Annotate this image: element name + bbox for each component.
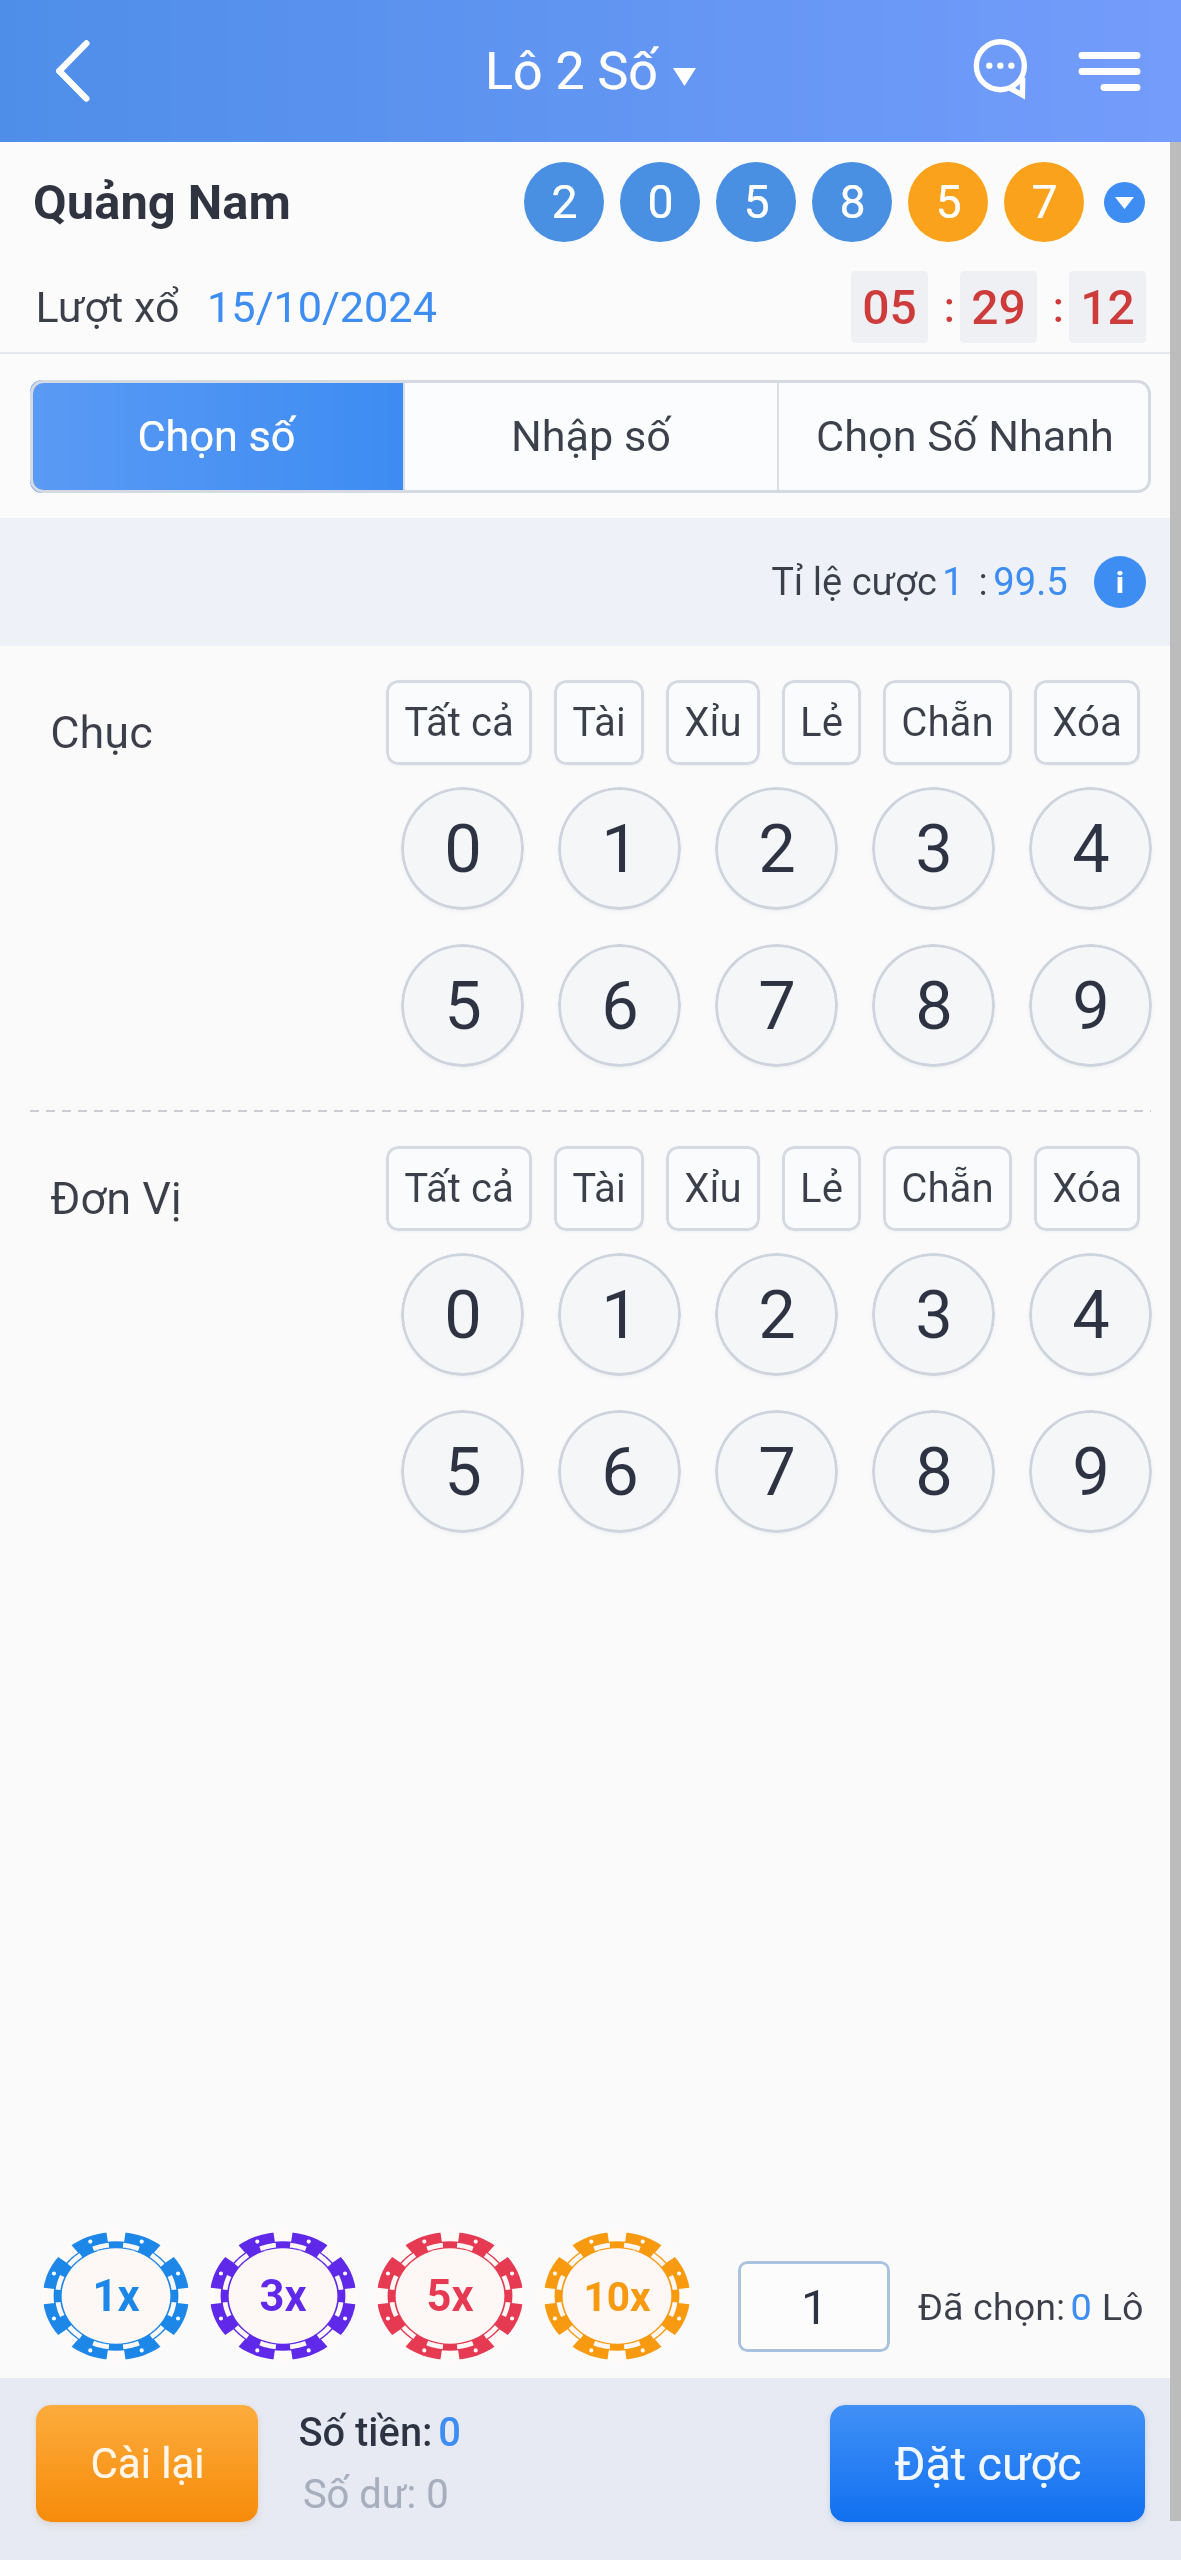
button[interactable]: 4 (1029, 787, 1152, 910)
button[interactable]: Tài (554, 1146, 644, 1231)
staticText: 1 (601, 810, 639, 888)
button[interactable]: Tất cả (386, 680, 532, 765)
button[interactable]: 5 (401, 944, 524, 1067)
staticText: : (928, 283, 960, 332)
button[interactable]: 8 (872, 1410, 995, 1533)
button[interactable]: 0 (401, 787, 524, 910)
staticText: 9 (1072, 1433, 1110, 1511)
staticText: 0 (426, 2471, 449, 2518)
staticText: 29 (971, 279, 1026, 335)
staticText: 6 (601, 1433, 639, 1511)
staticText: 3x (259, 2271, 307, 2322)
staticText: 3 (915, 810, 953, 888)
staticText: 7 (1031, 175, 1058, 229)
button[interactable]: Nhập số (405, 380, 777, 493)
button[interactable]: Chẵn (883, 1146, 1012, 1231)
staticText: 05 (862, 279, 917, 335)
staticText: Số dư: (293, 2471, 426, 2518)
button[interactable]: 9 (1029, 944, 1152, 1067)
button[interactable]: Cài lại (36, 2405, 258, 2522)
staticText: Lẻ (800, 699, 843, 746)
button[interactable]: 3 (872, 1253, 995, 1376)
staticText: Lô (1092, 2285, 1144, 2329)
staticText: Tất cả (404, 1165, 514, 1212)
button[interactable]: Expand results (1104, 182, 1145, 223)
button[interactable]: Chẵn (883, 680, 1012, 765)
staticText: Cài lại (90, 2439, 205, 2488)
staticText: 0 (438, 2409, 461, 2456)
button[interactable]: Tài (554, 680, 644, 765)
staticText: Chục (50, 706, 153, 759)
staticText: 5 (743, 175, 770, 229)
staticText: Xóa (1052, 1165, 1122, 1212)
staticText: 3 (915, 1276, 953, 1354)
button[interactable]: 1x (43, 2232, 189, 2360)
staticText: 0 (647, 175, 674, 229)
staticText: Đơn Vị (50, 1172, 182, 1225)
button[interactable]: Lẻ (782, 680, 861, 765)
staticText: 4 (1072, 1276, 1110, 1354)
button[interactable]: 3 (872, 787, 995, 910)
staticText: Chọn số (137, 411, 296, 462)
button[interactable]: 5x (377, 2232, 523, 2360)
button[interactable]: Chọn Số Nhanh (779, 380, 1151, 493)
button[interactable]: 1 (558, 787, 681, 910)
staticText: 8 (915, 1433, 953, 1511)
button[interactable]: Tất cả (386, 1146, 532, 1231)
staticText: Đã chọn: (913, 2285, 1070, 2329)
button[interactable]: 7 (715, 1410, 838, 1533)
button[interactable]: Chat (937, 5, 1069, 137)
staticText: 12 (1080, 279, 1135, 335)
staticText: 0 (444, 810, 482, 888)
button[interactable]: Menu (1040, 5, 1172, 137)
staticText: Số tiền: (293, 2409, 438, 2456)
button[interactable]: 9 (1029, 1410, 1152, 1533)
button[interactable]: 4 (1029, 1253, 1152, 1376)
staticText: 1 (942, 560, 964, 605)
button[interactable]: 7 (715, 944, 838, 1067)
staticText: 4 (1072, 810, 1110, 888)
button[interactable]: Xóa (1034, 1146, 1140, 1231)
staticText: Chẵn (901, 1165, 994, 1212)
button[interactable]: Back (6, 5, 138, 137)
button[interactable]: 1 (738, 2261, 890, 2352)
button[interactable]: Xỉu (666, 1146, 760, 1231)
staticText: Chẵn (901, 699, 994, 746)
button[interactable]: Lẻ (782, 1146, 861, 1231)
staticText: Lẻ (800, 1165, 843, 1212)
staticText: 0 (1070, 2285, 1092, 2329)
button[interactable]: 0 (401, 1253, 524, 1376)
staticText: 10x (583, 2273, 651, 2320)
button[interactable]: 1 (558, 1253, 681, 1376)
button[interactable]: 3x (210, 2232, 356, 2360)
staticText: Tất cả (404, 699, 514, 746)
staticText: i (1116, 565, 1124, 600)
button[interactable]: Chọn số (30, 380, 403, 493)
staticText: Xỉu (684, 1165, 742, 1212)
button[interactable]: 8 (872, 944, 995, 1067)
staticText: 6 (601, 967, 639, 1045)
button[interactable]: 6 (558, 944, 681, 1067)
staticText: 2 (551, 175, 578, 229)
button[interactable]: Đặt cược (830, 2405, 1145, 2522)
staticText: 1 (601, 1276, 639, 1354)
button[interactable]: 2 (715, 1253, 838, 1376)
button[interactable]: Xóa (1034, 680, 1140, 765)
staticText: 5 (935, 175, 962, 229)
staticText: 5 (444, 1433, 482, 1511)
button[interactable]: 6 (558, 1410, 681, 1533)
button[interactable]: Info (1094, 556, 1146, 608)
staticText: Xóa (1052, 699, 1122, 746)
staticText: 99.5 (993, 560, 1068, 605)
staticText: 15/10/2024 (207, 282, 437, 333)
button[interactable]: 5 (401, 1410, 524, 1533)
staticText: 2 (758, 810, 796, 888)
staticText: 8 (915, 967, 953, 1045)
button[interactable]: 2 (715, 787, 838, 910)
button[interactable]: 10x (544, 2232, 690, 2360)
staticText: 1x (92, 2271, 140, 2322)
staticText: 7 (758, 1433, 796, 1511)
staticText: 5 (444, 967, 482, 1045)
staticText: 5x (426, 2271, 474, 2322)
button[interactable]: Xỉu (666, 680, 760, 765)
